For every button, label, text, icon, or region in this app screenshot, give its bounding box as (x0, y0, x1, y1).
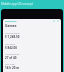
staticText: $ 1,248.50 (5, 35, 20, 39)
staticText: This week (5, 43, 16, 46)
staticText: Games (5, 23, 17, 28)
staticText: Play time (5, 63, 15, 66)
button[interactable]: This week (3, 43, 61, 50)
staticText: 14 h 20 m (5, 66, 20, 70)
staticText: Total earnings (5, 32, 20, 35)
staticText: Mobile app UI concept (1, 2, 33, 6)
staticText: 27 of 40 (5, 56, 17, 60)
button[interactable]: Play time (3, 63, 61, 70)
staticText: $ 842.00 (5, 46, 17, 50)
button[interactable]: Achievements (3, 53, 61, 60)
staticText: Dashboard (5, 20, 17, 23)
button[interactable]: Total earnings (3, 32, 61, 39)
staticText: Achievements (5, 53, 20, 56)
